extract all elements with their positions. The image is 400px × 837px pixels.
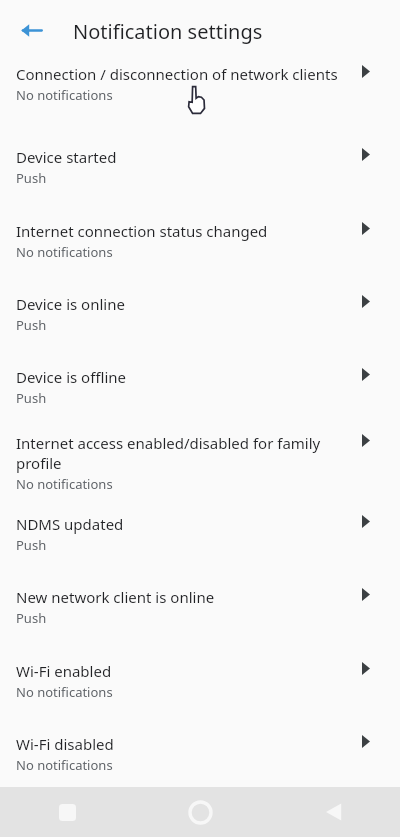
staticText: No notifications	[16, 86, 113, 104]
button[interactable]: Device is online	[0, 280, 400, 340]
staticText: Internet connection status changed	[16, 221, 268, 241]
staticText: Connection / disconnection of network cl…	[16, 64, 338, 84]
staticText: Device is offline	[16, 367, 126, 387]
button[interactable]: New network client is online	[0, 573, 400, 633]
staticText: Notification settings	[73, 18, 263, 45]
button[interactable]: Home	[134, 787, 267, 837]
staticText: Push	[16, 609, 47, 627]
button[interactable]: Recent apps	[0, 787, 134, 837]
button[interactable]: NDMS updated	[0, 500, 400, 560]
staticText: NDMS updated	[16, 514, 124, 534]
staticText: Push	[16, 536, 47, 554]
staticText: No notifications	[16, 475, 113, 493]
button[interactable]: Device started	[0, 133, 400, 193]
staticText: New network client is online	[16, 587, 215, 607]
staticText: Internet access enabled/disabled for fam…	[16, 433, 352, 473]
staticText: No notifications	[16, 683, 113, 701]
button[interactable]: Internet access enabled/disabled for fam…	[0, 419, 400, 501]
staticText: Wi-Fi disabled	[16, 734, 114, 754]
button[interactable]: Connection / disconnection of network cl…	[0, 50, 400, 132]
button[interactable]: Wi-Fi disabled	[0, 720, 400, 780]
staticText: Push	[16, 316, 47, 334]
staticText: Device started	[16, 147, 117, 167]
staticText: No notifications	[16, 243, 113, 261]
staticText: Wi-Fi enabled	[16, 661, 112, 681]
staticText: Device is online	[16, 294, 125, 314]
staticText: No notifications	[16, 756, 113, 774]
button[interactable]: Navigate up	[9, 8, 53, 52]
staticText: Push	[16, 169, 47, 187]
button[interactable]: Wi-Fi enabled	[0, 647, 400, 707]
staticText: Push	[16, 389, 47, 407]
button[interactable]: Device is offline	[0, 353, 400, 413]
button[interactable]: Internet connection status changed	[0, 207, 400, 267]
